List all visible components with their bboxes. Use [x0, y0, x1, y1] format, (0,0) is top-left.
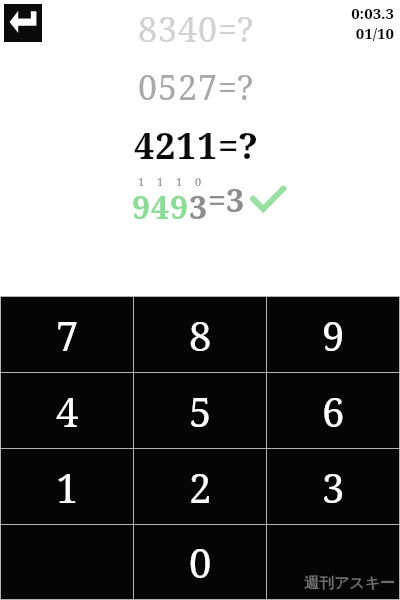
- staticText: 1: [176, 174, 183, 189]
- button[interactable]: 4: [1, 373, 133, 448]
- staticText: =?: [218, 6, 254, 52]
- staticText: 7: [56, 308, 79, 362]
- staticText: 9: [170, 185, 189, 222]
- button[interactable]: 8: [134, 297, 266, 372]
- staticText: 0:03.3: [351, 3, 394, 23]
- staticText: 4: [151, 185, 170, 222]
- staticText: =?: [218, 121, 259, 170]
- staticText: 01/10: [355, 23, 394, 43]
- button[interactable]: 9: [267, 297, 399, 372]
- staticText: 2: [155, 121, 176, 170]
- staticText: 7: [198, 64, 218, 110]
- button[interactable]: 0: [134, 525, 266, 599]
- button[interactable]: 3: [267, 449, 399, 524]
- staticText: 週刊アスキー: [304, 574, 396, 593]
- staticText: 9: [132, 185, 151, 222]
- staticText: 8: [189, 308, 212, 362]
- staticText: 3: [189, 185, 208, 222]
- staticText: 0: [138, 64, 158, 110]
- staticText: 4: [178, 6, 198, 52]
- button[interactable]: 週刊アスキー: [267, 525, 399, 599]
- staticText: 2: [189, 460, 212, 514]
- button[interactable]: 2: [134, 449, 266, 524]
- button[interactable]: 6: [267, 373, 399, 448]
- staticText: 1: [157, 174, 164, 189]
- staticText: 1: [197, 121, 218, 170]
- staticText: 4: [134, 121, 155, 170]
- button[interactable]: 7: [1, 297, 133, 372]
- staticText: 3: [322, 460, 345, 514]
- staticText: 8: [138, 6, 158, 52]
- button[interactable]: Back: [4, 4, 42, 42]
- staticText: 0: [198, 6, 218, 52]
- staticText: 3: [158, 6, 178, 52]
- staticText: 2: [178, 64, 198, 110]
- staticText: 5: [158, 64, 178, 110]
- staticText: 6: [322, 384, 345, 438]
- staticText: 9: [322, 308, 345, 362]
- staticText: =?: [218, 64, 254, 110]
- staticText: 1: [56, 460, 79, 514]
- staticText: 0: [189, 535, 212, 589]
- button[interactable]: 5: [134, 373, 266, 448]
- staticText: 4: [56, 384, 79, 438]
- staticText: =3: [208, 178, 245, 222]
- staticText: 5: [189, 384, 212, 438]
- staticText: 1: [176, 121, 197, 170]
- staticText: 1: [138, 174, 145, 189]
- button[interactable]: 1: [1, 449, 133, 524]
- staticText: 0: [195, 174, 202, 189]
